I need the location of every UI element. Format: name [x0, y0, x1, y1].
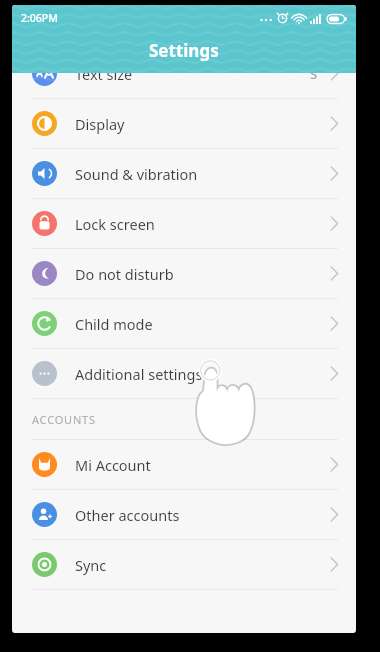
button[interactable]: Additional settings — [12, 349, 356, 398]
button[interactable]: Other accounts — [12, 490, 356, 539]
staticText: Sound & vibration — [75, 164, 198, 184]
staticText: ACCOUNTS — [32, 412, 96, 427]
staticText: Mi Account — [75, 455, 151, 475]
other: Tap pointer — [184, 358, 260, 450]
staticText: Other accounts — [75, 505, 180, 525]
button[interactable]: Do not disturb — [12, 249, 356, 298]
button[interactable]: Lock screen — [12, 199, 356, 248]
staticText: Text size — [75, 64, 133, 84]
staticText: 2:06PM — [21, 11, 58, 25]
staticText: Display — [75, 114, 125, 134]
staticText: Do not disturb — [75, 264, 174, 284]
staticText: Sync — [75, 555, 107, 575]
button[interactable]: Sound & vibration — [12, 149, 356, 198]
button[interactable]: Sync — [12, 540, 356, 589]
button[interactable]: Text size — [12, 49, 356, 98]
button[interactable]: Mi Account — [12, 440, 356, 489]
button[interactable]: Child mode — [12, 299, 356, 348]
button[interactable]: Display — [12, 99, 356, 148]
staticText: Settings — [149, 39, 219, 62]
staticText: Child mode — [75, 314, 153, 334]
staticText: Lock screen — [75, 214, 155, 234]
staticText: Additional settings — [75, 364, 203, 384]
staticText: S — [310, 65, 318, 83]
